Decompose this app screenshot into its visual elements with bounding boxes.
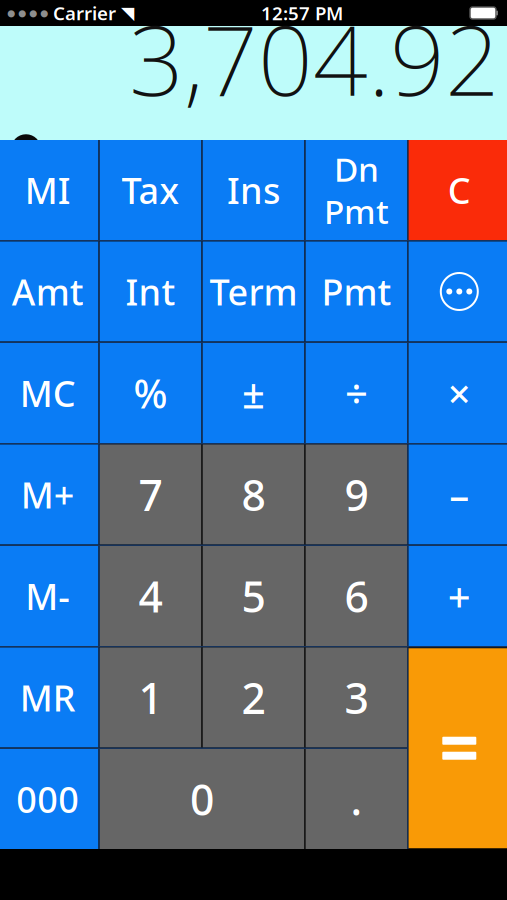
button[interactable]: % [100,343,201,443]
button[interactable]: Term [203,241,304,341]
staticText: M+ [21,471,75,518]
button[interactable]: . [306,749,407,849]
staticText: Term [209,268,297,315]
button[interactable]: Int [100,241,201,341]
button[interactable]: Dn [306,140,407,240]
staticText: Tax [122,166,180,214]
staticText: Ins [227,166,280,214]
staticText: MC [20,369,76,417]
button[interactable]: ÷ [306,343,407,443]
button[interactable]: – [409,444,507,544]
button[interactable]: × [409,343,507,443]
staticText: 3 [344,669,368,726]
button[interactable]: 4 [100,546,201,646]
button[interactable]: MR [0,647,98,747]
staticText: + [448,569,471,622]
staticText: Int [126,268,176,315]
staticText: 5 [241,568,265,624]
button[interactable]: More options [409,241,507,341]
button[interactable]: MC [0,343,98,443]
staticText: ± [242,366,265,419]
button[interactable]: M+ [0,444,98,544]
button[interactable]: + [409,546,507,646]
button[interactable]: Settings [0,130,51,168]
staticText: . [350,771,362,827]
staticText: Pmt [111,134,156,164]
staticText: MR [20,674,76,721]
staticText: Dn [334,147,379,191]
staticText: 2 [241,669,265,726]
button[interactable]: M- [0,546,98,646]
button[interactable]: 5 [203,546,304,646]
staticText: MI [25,166,71,214]
staticText: Amt [12,268,84,315]
staticText: 6 [344,568,368,624]
button[interactable]: ± [203,343,304,443]
staticText: 12:57 PM [261,1,343,25]
button[interactable]: 7 [100,444,201,544]
button[interactable]: Amt [0,241,98,341]
button[interactable]: C [409,140,507,240]
staticText: ÷ [345,366,368,419]
staticText: 000 [16,775,79,823]
staticText: Pmt [321,268,391,315]
staticText: ● ● ● ● [7,8,48,18]
staticText: ◥ [121,3,134,23]
staticText: 7 [139,466,163,523]
button[interactable]: 8 [203,444,304,544]
staticText: C [448,166,471,214]
staticText: – [449,468,469,521]
staticText: M- [25,572,70,620]
staticText: 0 [190,771,214,827]
staticText: 4 [139,568,163,624]
button[interactable]: MI [0,140,98,240]
staticText: Carrier [53,1,116,25]
button[interactable]: 1 [100,647,201,747]
staticText: 1 [139,669,163,726]
button[interactable]: 0 [100,749,304,849]
staticText: 9 [344,466,368,523]
button[interactable]: Tax [100,140,201,240]
button[interactable]: Pmt [306,241,407,341]
staticText: % [134,366,168,419]
button[interactable]: 2 [203,647,304,747]
button[interactable]: 6 [306,546,407,646]
staticText: 3,704.92 [129,0,500,122]
staticText: × [448,366,471,419]
button[interactable]: 3 [306,647,407,747]
staticText: Pmt [324,189,389,233]
button[interactable]: Equals [409,648,507,848]
staticText: 8 [241,466,265,523]
button[interactable]: 000 [0,749,98,849]
button[interactable]: Ins [203,140,304,240]
button[interactable]: 9 [306,444,407,544]
